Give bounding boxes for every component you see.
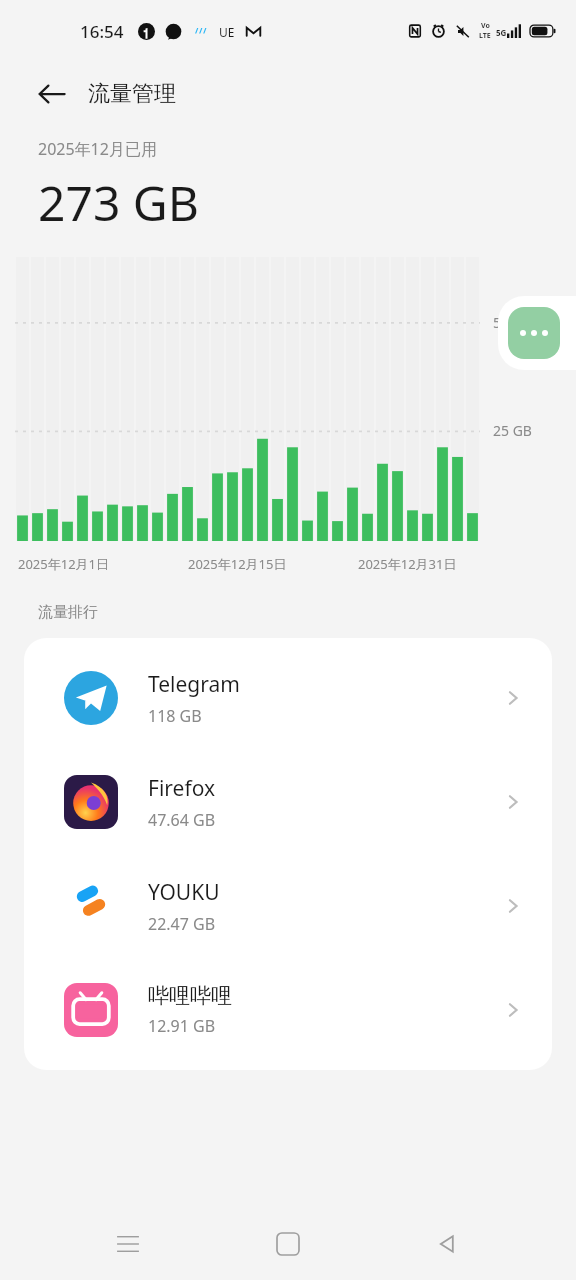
- staticText: 2025年12月15日: [188, 555, 287, 573]
- staticText: 16:54: [80, 20, 124, 43]
- staticText: LTE: [479, 31, 491, 41]
- staticText: 25 GB: [493, 421, 532, 440]
- button[interactable]: 哔哩哔哩: [24, 958, 552, 1062]
- staticText: 2025年12月31日: [358, 555, 457, 573]
- button[interactable]: Back: [24, 66, 80, 122]
- staticText: 2025年12月1日: [18, 555, 110, 573]
- staticText: Vo: [481, 21, 490, 31]
- staticText: 流量排行: [38, 603, 98, 622]
- staticText: 50 GB: [493, 313, 532, 332]
- staticText: 273 GB: [38, 170, 199, 235]
- button[interactable]: Telegram: [24, 646, 552, 750]
- staticText: YOUKU: [148, 878, 220, 907]
- staticText: 118 GB: [148, 705, 202, 727]
- staticText: 47.64 GB: [148, 809, 216, 831]
- staticText: 12.91 GB: [148, 1015, 216, 1037]
- button[interactable]: Firefox: [24, 750, 552, 854]
- button[interactable]: Recent apps: [96, 1212, 160, 1276]
- staticText: Firefox: [148, 774, 216, 803]
- button[interactable]: More options: [508, 307, 560, 359]
- staticText: Telegram: [148, 670, 240, 699]
- button[interactable]: Home: [256, 1212, 320, 1276]
- button[interactable]: YOUKU: [24, 854, 552, 958]
- staticText: 2025年12月已用: [38, 138, 157, 160]
- staticText: 流量管理: [88, 80, 176, 108]
- staticText: UE: [219, 24, 235, 40]
- staticText: 5G: [496, 27, 507, 38]
- staticText: 22.47 GB: [148, 913, 216, 935]
- staticText: 哔哩哔哩: [148, 983, 232, 1009]
- button[interactable]: Back: [416, 1212, 480, 1276]
